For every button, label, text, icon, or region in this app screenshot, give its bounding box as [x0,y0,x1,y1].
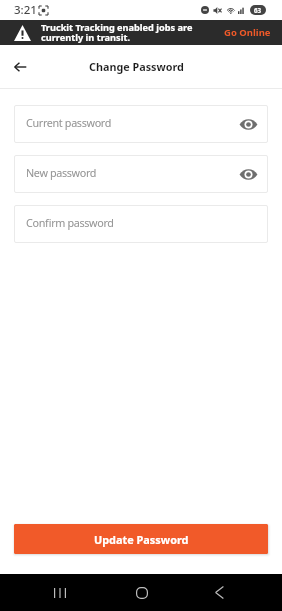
staticText: Truckit Tracking enabled jobs are curren… [41,21,193,44]
button[interactable]: Recent apps [32,574,87,611]
staticText: Change Password [89,59,184,74]
staticText: 3:21 [14,2,37,18]
button[interactable]: Go Online [211,22,282,43]
staticText: Go Online [224,26,271,39]
button[interactable]: Current password [14,105,268,143]
button[interactable]: New password [14,155,268,193]
button[interactable]: Toggle password visibility [229,105,268,143]
staticText: New password [26,165,229,180]
staticText: 63 [254,6,262,14]
button[interactable]: Update Password [14,524,268,554]
button[interactable]: Home [114,574,169,611]
button[interactable]: Back [192,574,247,611]
staticText: Confirm password [26,215,268,230]
button[interactable]: Back [5,52,35,82]
staticText: Update Password [94,532,189,547]
staticText: Current password [26,115,229,130]
button[interactable]: Toggle password visibility [229,155,268,193]
button[interactable]: Confirm password [14,205,268,243]
